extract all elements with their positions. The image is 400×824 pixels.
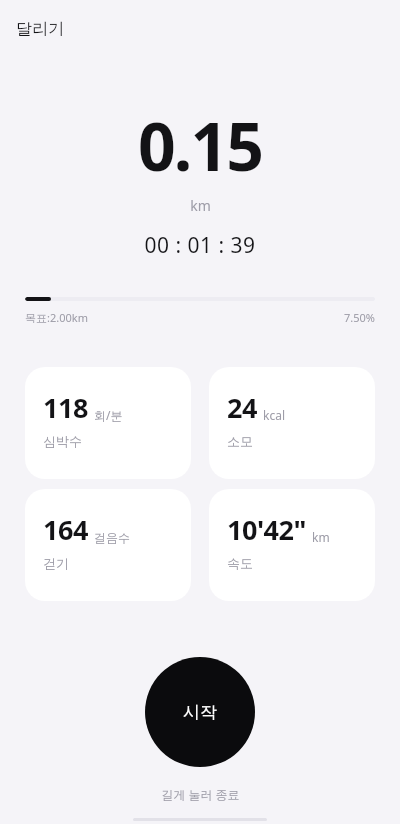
staticText: 7.50% — [344, 310, 375, 325]
staticText: 소모 — [227, 433, 253, 449]
staticText: 걷기 — [43, 555, 69, 571]
staticText: 24 — [227, 389, 257, 426]
staticText: 00 : 01 : 39 — [144, 231, 256, 260]
staticText: 걸음수 — [94, 530, 130, 545]
staticText: 시작 — [183, 702, 217, 723]
staticText: 0.15 — [138, 100, 262, 190]
staticText: 목표:2.00km — [25, 310, 88, 325]
staticText: 달리기 — [16, 19, 64, 39]
button[interactable]: 10'42" — [209, 489, 375, 601]
button[interactable]: 164 — [25, 489, 191, 601]
staticText: km — [190, 196, 211, 215]
staticText: 속도 — [227, 555, 253, 571]
staticText: 길게 눌러 종료 — [161, 786, 240, 802]
button[interactable]: 24 — [209, 367, 375, 479]
button[interactable]: 118 — [25, 367, 191, 479]
staticText: 118 — [43, 389, 88, 426]
staticText: 164 — [43, 511, 88, 548]
staticText: kcal — [263, 407, 285, 423]
button[interactable]: 시작 — [145, 657, 255, 767]
staticText: 10'42" — [227, 511, 306, 548]
staticText: 심박수 — [43, 433, 82, 449]
staticText: km — [312, 529, 330, 545]
staticText: 회/분 — [94, 407, 123, 423]
